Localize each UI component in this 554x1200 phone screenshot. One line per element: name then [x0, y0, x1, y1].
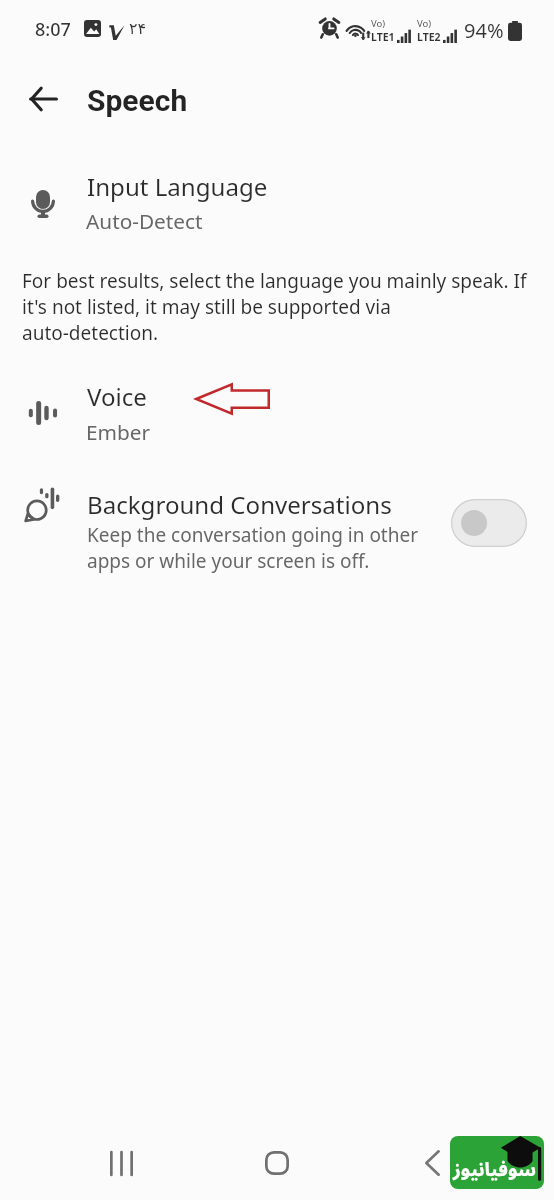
staticText: Auto-Detect [86, 207, 203, 235]
staticText: 94% [464, 17, 504, 44]
button[interactable]: Home [253, 1139, 301, 1187]
button[interactable]: Input Language [0, 160, 554, 248]
button[interactable]: Background Conversations toggle [451, 499, 527, 547]
staticText: Vo) [371, 17, 386, 30]
staticText: ۲۴ [129, 19, 147, 38]
staticText: Ember [86, 418, 151, 446]
staticText: Vo) [417, 17, 432, 30]
button[interactable]: Sofia News watermark [450, 1136, 544, 1189]
button[interactable]: Voice [0, 375, 554, 457]
staticText: Keep the conversation going in other app… [87, 522, 447, 574]
staticText: Voice [87, 380, 147, 413]
button[interactable]: Recent apps [97, 1139, 145, 1187]
staticText: LTE2 [417, 30, 441, 44]
staticText: Speech [87, 83, 188, 118]
staticText: Background Conversations [87, 488, 392, 521]
button[interactable]: Back [408, 1139, 456, 1187]
staticText: LTE1 [371, 30, 395, 44]
button[interactable]: Back [21, 77, 65, 121]
staticText: 8:07 [35, 17, 71, 42]
staticText: Input Language [87, 170, 268, 203]
staticText: For best results, select the language yo… [22, 268, 554, 346]
staticText: سوفيانيوز [453, 1150, 536, 1189]
button[interactable]: Background Conversations [0, 478, 554, 582]
